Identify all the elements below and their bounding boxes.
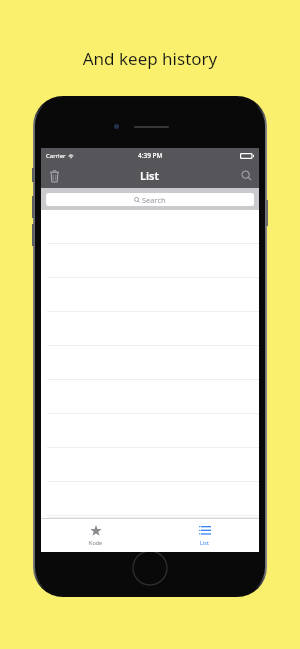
button[interactable]: List xyxy=(150,519,259,552)
staticText: Search xyxy=(142,195,166,205)
staticText: List xyxy=(200,539,209,546)
staticText: List xyxy=(140,168,160,183)
button[interactable]: Search xyxy=(233,163,259,188)
staticText: And keep history xyxy=(0,47,300,70)
staticText: Kode xyxy=(89,539,103,546)
staticText: Carrier xyxy=(46,152,66,160)
button[interactable] xyxy=(41,516,259,518)
button[interactable]: Delete xyxy=(41,163,67,188)
staticText: 4:39 PM xyxy=(138,151,163,160)
button[interactable]: Kode xyxy=(41,519,150,552)
button[interactable]: Search xyxy=(41,188,259,210)
